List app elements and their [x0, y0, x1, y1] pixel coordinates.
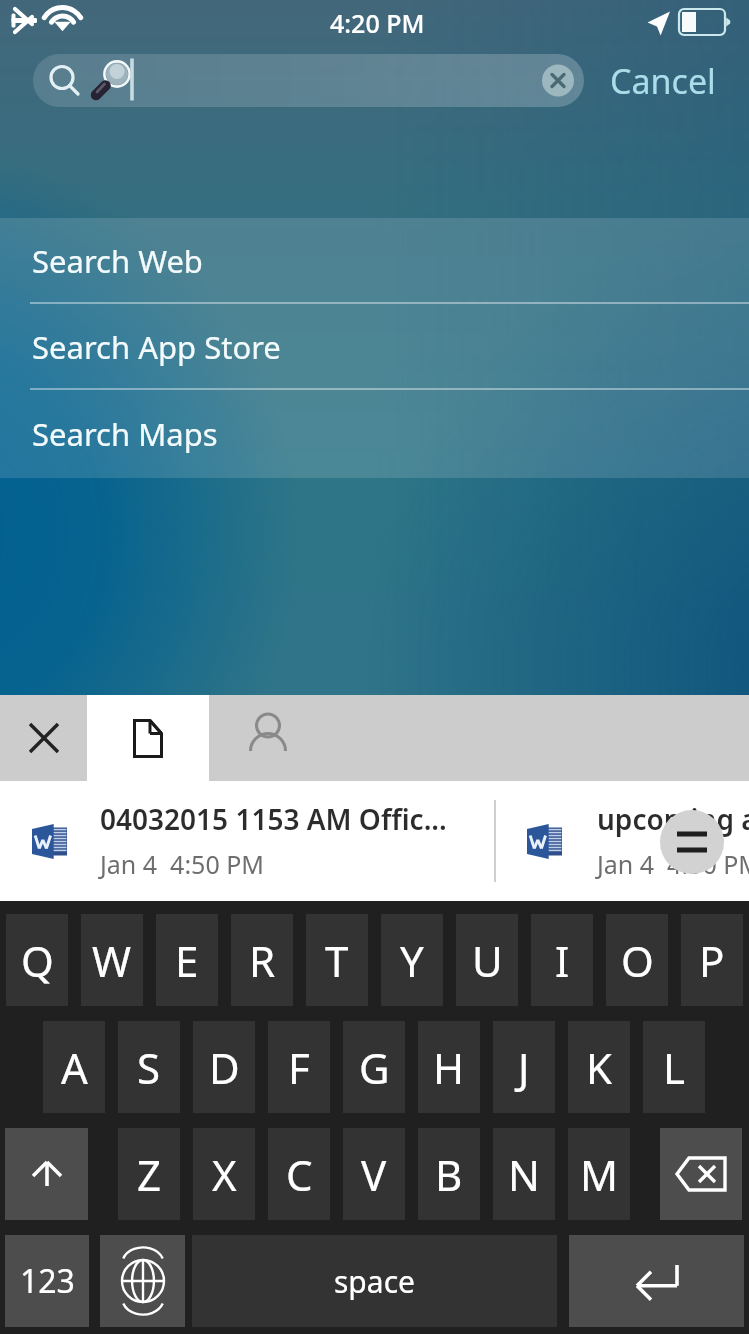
button[interactable]: B [418, 1128, 480, 1220]
button[interactable]: Close [0, 695, 87, 781]
staticText: V [361, 1146, 387, 1203]
staticText: W [92, 932, 132, 989]
button[interactable]: N [493, 1128, 555, 1220]
button[interactable]: U [456, 914, 518, 1006]
button[interactable]: M [568, 1128, 630, 1220]
button[interactable]: S [118, 1021, 180, 1113]
staticText: Search Maps [32, 413, 218, 455]
staticText: M [580, 1146, 619, 1203]
staticText: space [334, 1261, 415, 1302]
button[interactable]: C [268, 1128, 330, 1220]
staticText: Z [137, 1146, 162, 1203]
staticText: J [518, 1039, 530, 1096]
button[interactable]: Backspace [660, 1128, 742, 1220]
button[interactable]: Shift [5, 1128, 88, 1220]
staticText: D [209, 1039, 240, 1096]
staticText: Y [400, 932, 424, 989]
button[interactable]: Cancel [610, 50, 716, 111]
button[interactable]: Account [209, 695, 749, 781]
button[interactable]: G [343, 1021, 405, 1113]
staticText: A [61, 1039, 88, 1096]
button[interactable]: D [193, 1021, 255, 1113]
button[interactable]: Search Maps [0, 390, 749, 478]
button[interactable]: Resize [660, 810, 724, 874]
staticText: B [435, 1146, 463, 1203]
button[interactable]: Return [569, 1235, 744, 1327]
staticText: I [555, 932, 570, 989]
staticText: P [699, 932, 725, 989]
staticText: O [621, 932, 654, 989]
staticText: T [325, 932, 349, 989]
staticText: Q [21, 932, 54, 989]
button[interactable]: T [306, 914, 368, 1006]
button[interactable]: V [343, 1128, 405, 1220]
button[interactable] [33, 54, 584, 107]
button[interactable]: upcoming age [496, 781, 749, 901]
button[interactable]: 04032015 1153 AM Offic... [0, 781, 494, 901]
staticText: C [286, 1146, 313, 1203]
button[interactable]: L [643, 1021, 705, 1113]
staticText: 04032015 1153 AM Offic... [100, 800, 447, 838]
button[interactable]: Documents [87, 695, 209, 781]
button[interactable]: Y [381, 914, 443, 1006]
button[interactable]: Search Web [0, 218, 749, 304]
button[interactable]: A [43, 1021, 105, 1113]
button[interactable]: H [418, 1021, 480, 1113]
button[interactable]: Z [118, 1128, 180, 1220]
staticText: 123 [20, 1259, 75, 1303]
button[interactable]: Q [6, 914, 68, 1006]
staticText: X [212, 1146, 237, 1203]
button[interactable]: I [531, 914, 593, 1006]
staticText: K [586, 1039, 612, 1096]
staticText: R [249, 932, 276, 989]
staticText: G [359, 1039, 390, 1096]
button[interactable]: W [81, 914, 143, 1006]
button[interactable]: F [268, 1021, 330, 1113]
staticText: E [175, 932, 199, 989]
staticText: Cancel [610, 58, 716, 104]
staticText: Search Web [32, 240, 203, 282]
staticText: N [508, 1146, 540, 1203]
staticText: 4:20 PM [330, 6, 425, 40]
staticText: Jan 4 4:50 PM [597, 847, 749, 881]
staticText: Jan 4 4:50 PM [100, 847, 265, 881]
button[interactable]: O [606, 914, 668, 1006]
button[interactable]: space [192, 1235, 557, 1327]
staticText: H [433, 1039, 465, 1096]
staticText: F [288, 1039, 310, 1096]
staticText: Search App Store [32, 326, 281, 368]
button[interactable]: J [493, 1021, 555, 1113]
button[interactable]: Change language [100, 1235, 185, 1327]
button[interactable]: Search App Store [0, 304, 749, 390]
button[interactable]: E [156, 914, 218, 1006]
button[interactable]: P [681, 914, 743, 1006]
staticText: upcoming age [597, 800, 749, 838]
staticText: L [663, 1039, 686, 1096]
staticText: S [137, 1039, 161, 1096]
button[interactable]: R [231, 914, 293, 1006]
staticText: U [472, 932, 503, 989]
button[interactable]: K [568, 1021, 630, 1113]
button[interactable]: X [193, 1128, 255, 1220]
button[interactable]: 123 [5, 1235, 89, 1327]
